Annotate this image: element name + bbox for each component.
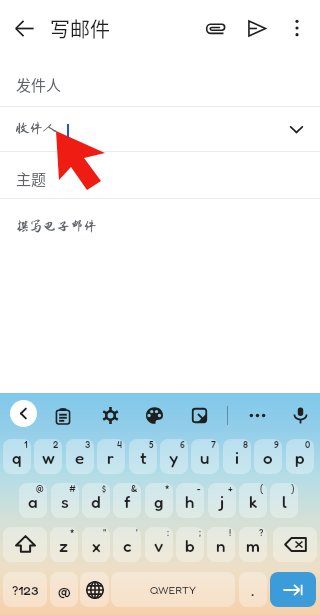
staticText: e bbox=[75, 447, 85, 468]
staticText: : bbox=[167, 527, 170, 538]
staticText: s bbox=[61, 491, 69, 512]
staticText: v bbox=[154, 535, 164, 556]
staticText: 8 bbox=[243, 439, 248, 450]
staticText: w bbox=[42, 447, 55, 468]
button[interactable]: q bbox=[3, 439, 31, 474]
button[interactable]: Theme bbox=[140, 393, 168, 438]
staticText: g bbox=[154, 491, 164, 512]
button[interactable]: 主题 bbox=[0, 152, 320, 199]
staticText: y bbox=[169, 447, 179, 468]
button[interactable]: 发件人 bbox=[0, 56, 320, 107]
button[interactable]: w bbox=[34, 439, 62, 474]
staticText: 撰写电子邮件 bbox=[16, 219, 98, 234]
button[interactable]: z bbox=[50, 527, 78, 562]
staticText: 9 bbox=[274, 439, 279, 450]
button[interactable]: l bbox=[270, 483, 298, 518]
staticText: h bbox=[185, 491, 195, 512]
button[interactable]: More bbox=[243, 393, 271, 438]
staticText: j bbox=[220, 491, 225, 512]
staticText: f bbox=[124, 491, 131, 512]
staticText: d bbox=[91, 491, 101, 512]
staticText: q bbox=[12, 447, 22, 468]
button[interactable]: k bbox=[239, 483, 267, 518]
button[interactable]: d bbox=[82, 483, 110, 518]
button[interactable]: Change language bbox=[80, 572, 109, 607]
button[interactable]: x bbox=[82, 527, 110, 562]
staticText: u bbox=[200, 447, 210, 468]
staticText: ; bbox=[199, 527, 201, 538]
button[interactable]: m bbox=[239, 527, 267, 562]
staticText: + bbox=[228, 483, 233, 494]
button[interactable]: i bbox=[223, 439, 251, 474]
button[interactable]: Shift bbox=[3, 527, 47, 562]
button[interactable]: y bbox=[160, 439, 188, 474]
staticText: - bbox=[197, 483, 201, 494]
staticText: ' bbox=[136, 527, 138, 538]
staticText: c bbox=[123, 535, 132, 556]
staticText: 0 bbox=[305, 439, 311, 450]
staticText: & bbox=[131, 483, 138, 494]
staticText: b bbox=[185, 535, 195, 556]
button[interactable]: v bbox=[145, 527, 173, 562]
staticText: $ bbox=[102, 483, 107, 494]
staticText: 主题 bbox=[16, 168, 47, 190]
button[interactable]: Stickers bbox=[185, 393, 213, 438]
button[interactable]: t bbox=[129, 439, 157, 474]
staticText: 7 bbox=[211, 439, 216, 450]
button[interactable]: Voice input off bbox=[286, 393, 314, 438]
staticText: 5 bbox=[149, 439, 154, 450]
staticText: 4 bbox=[117, 439, 122, 450]
button[interactable]: p bbox=[286, 439, 314, 474]
button[interactable]: u bbox=[191, 439, 219, 474]
staticText: ! bbox=[229, 527, 232, 538]
staticText: 发件人 bbox=[16, 74, 62, 96]
staticText: * bbox=[70, 527, 75, 538]
button[interactable]: a bbox=[19, 483, 47, 518]
button[interactable]: o bbox=[254, 439, 282, 474]
staticText: p bbox=[295, 447, 305, 468]
button[interactable]: Send bbox=[240, 0, 272, 56]
button[interactable]: f bbox=[113, 483, 141, 518]
staticText: x bbox=[92, 535, 101, 556]
staticText: 写邮件 bbox=[50, 14, 110, 43]
button[interactable]: e bbox=[66, 439, 94, 474]
button[interactable]: h bbox=[176, 483, 204, 518]
staticText: ) bbox=[291, 483, 295, 494]
button[interactable]: 收件人 bbox=[0, 107, 320, 152]
button[interactable]: Enter bbox=[270, 572, 316, 607]
staticText: z bbox=[59, 535, 69, 556]
button[interactable]: Clipboard bbox=[49, 393, 77, 438]
staticText: QWERTY bbox=[150, 583, 197, 596]
button[interactable]: Back bbox=[8, 0, 40, 56]
staticText: r bbox=[107, 447, 115, 468]
button[interactable]: Attach file bbox=[199, 0, 231, 56]
button[interactable]: Settings bbox=[96, 393, 124, 438]
button[interactable]: QWERTY bbox=[111, 572, 235, 607]
button[interactable]: Backspace bbox=[273, 527, 317, 562]
button[interactable]: ?123 bbox=[3, 572, 47, 607]
staticText: ?123 bbox=[12, 582, 39, 598]
staticText: l bbox=[282, 491, 287, 512]
staticText: a bbox=[28, 491, 38, 512]
button[interactable]: s bbox=[51, 483, 79, 518]
button[interactable]: r bbox=[97, 439, 125, 474]
staticText: m bbox=[246, 535, 260, 556]
button[interactable]: More options bbox=[281, 0, 313, 56]
staticText: ? bbox=[259, 527, 264, 538]
staticText: " bbox=[103, 527, 107, 538]
button[interactable]: b bbox=[176, 527, 204, 562]
button[interactable]: . bbox=[239, 572, 267, 607]
button[interactable]: 撰写电子邮件 bbox=[0, 199, 320, 255]
button[interactable]: Hide keyboard bbox=[10, 400, 37, 427]
staticText: 收件人 bbox=[16, 121, 57, 136]
staticText: o bbox=[263, 447, 273, 468]
staticText: 1 bbox=[24, 439, 28, 450]
staticText: 2 bbox=[53, 439, 59, 450]
staticText: i bbox=[235, 447, 239, 468]
button[interactable]: g bbox=[145, 483, 173, 518]
button[interactable]: c bbox=[113, 527, 141, 562]
staticText: @ bbox=[36, 483, 44, 494]
button[interactable]: j bbox=[208, 483, 236, 518]
button[interactable]: @ bbox=[50, 572, 78, 607]
button[interactable]: n bbox=[207, 527, 235, 562]
